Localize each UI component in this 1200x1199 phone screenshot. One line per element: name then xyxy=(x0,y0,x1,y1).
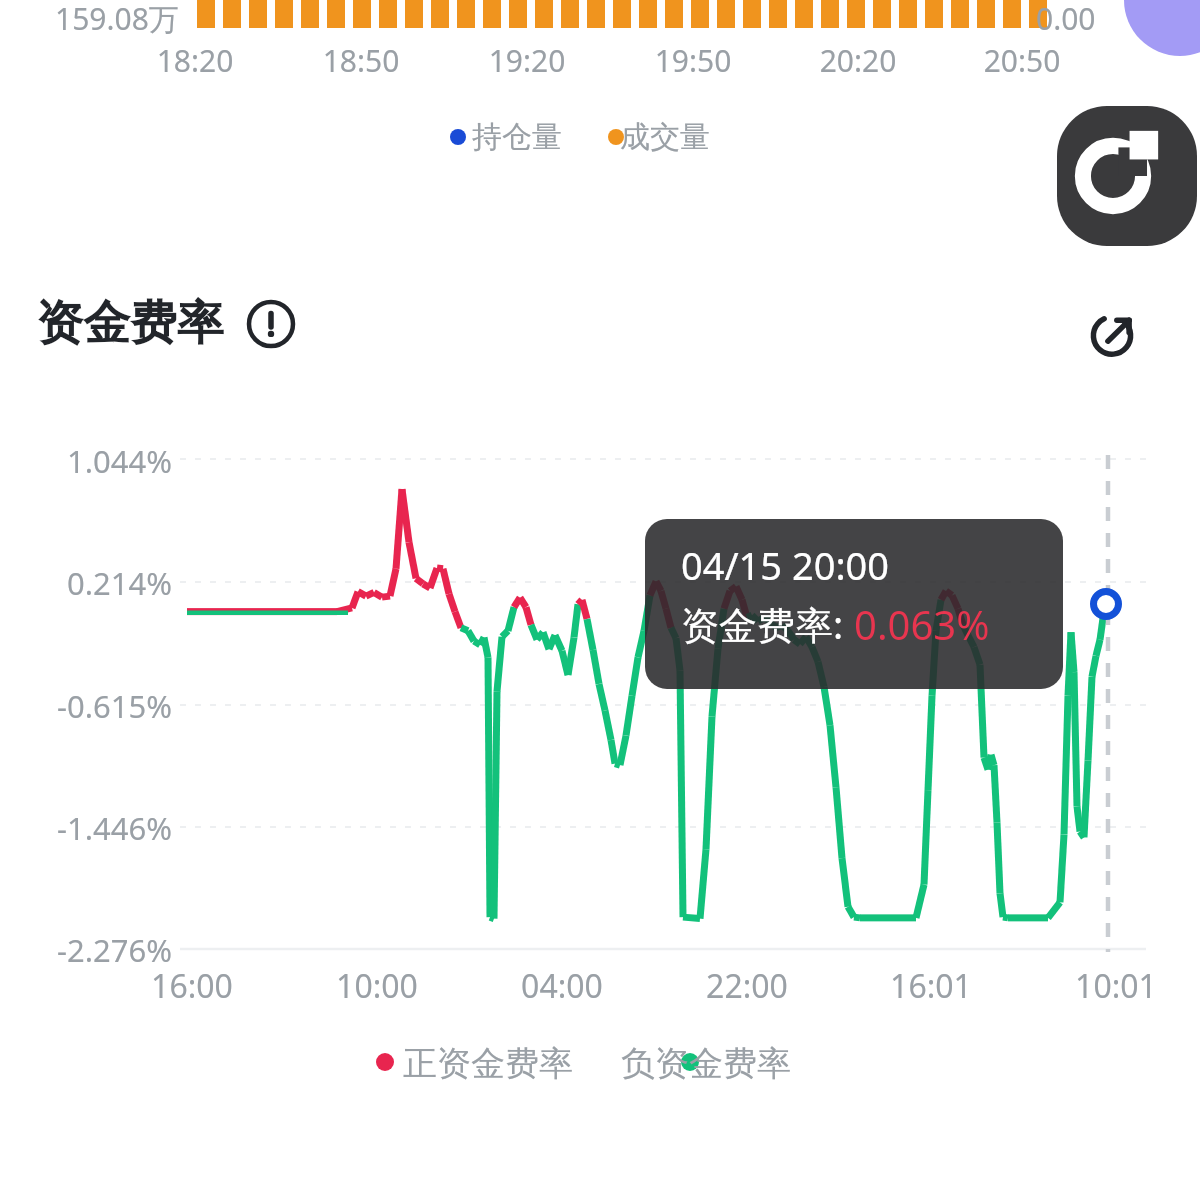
staticText: 22:00 xyxy=(692,964,802,1008)
staticText: 0.214% xyxy=(0,562,172,604)
staticText: 19:20 xyxy=(475,40,579,81)
staticText: 19:50 xyxy=(641,40,745,81)
staticText: -0.615% xyxy=(0,685,172,727)
staticText: 16:00 xyxy=(137,964,247,1008)
staticText: 正资金费率 xyxy=(403,1042,573,1085)
staticText: 持仓量 xyxy=(472,118,562,156)
staticText: 10:01 xyxy=(1061,964,1171,1008)
staticText: 16:01 xyxy=(876,964,986,1008)
staticText: 20:20 xyxy=(806,40,910,81)
button[interactable]: App logo button xyxy=(1057,106,1197,246)
staticText: 159.08万 xyxy=(55,0,179,39)
staticText: 资金费率: xyxy=(681,598,854,650)
staticText: 负资金费率 xyxy=(621,1042,791,1085)
staticText: 1.044% xyxy=(0,440,172,482)
staticText: 成交量 xyxy=(620,118,710,156)
staticText: 0.063% xyxy=(854,597,990,651)
staticText: 04/15 20:00 xyxy=(681,539,890,591)
staticText: 18:20 xyxy=(143,40,247,81)
staticText: 10:00 xyxy=(322,964,432,1008)
staticText: 20:50 xyxy=(970,40,1074,81)
button[interactable]: 资金费率 xyxy=(36,294,296,353)
staticText: -1.446% xyxy=(0,807,172,849)
staticText: 资金费率 xyxy=(36,294,224,353)
button[interactable]: Share xyxy=(1079,296,1151,368)
staticText: 0.00 xyxy=(1036,0,1096,39)
staticText: 18:50 xyxy=(309,40,413,81)
button[interactable]: 04/15 20:00 xyxy=(645,519,1063,689)
staticText: 04:00 xyxy=(507,964,617,1008)
staticText: -2.276% xyxy=(0,929,172,971)
